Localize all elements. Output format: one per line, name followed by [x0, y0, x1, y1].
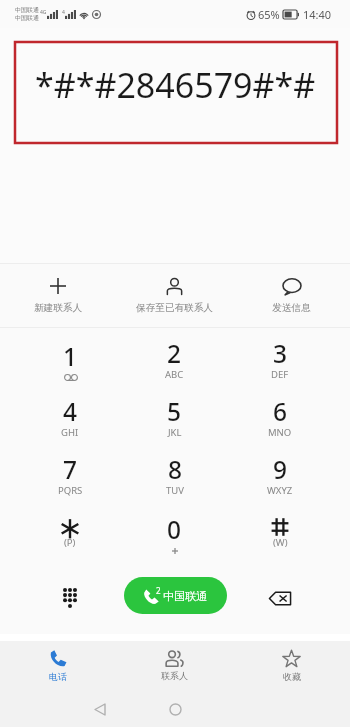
- staticText: 65%: [258, 7, 280, 22]
- button[interactable]: 收藏: [233, 641, 350, 690]
- staticText: DEF: [271, 368, 289, 381]
- staticText: (W): [273, 536, 288, 549]
- button[interactable]: (W): [227, 505, 332, 563]
- button[interactable]: 5: [122, 389, 227, 447]
- staticText: 中国联通: [15, 14, 39, 22]
- button[interactable]: 9: [227, 447, 332, 505]
- staticText: 中国联通: [15, 6, 39, 14]
- staticText: 新建联系人: [34, 302, 82, 314]
- button[interactable]: Back: [86, 695, 114, 723]
- staticText: 5: [167, 395, 182, 428]
- staticText: JKL: [168, 426, 182, 439]
- button[interactable]: 0: [122, 505, 227, 563]
- staticText: 6: [273, 395, 288, 428]
- button[interactable]: 新建联系人: [0, 264, 116, 327]
- staticText: (P): [64, 536, 76, 549]
- staticText: 2: [156, 585, 161, 596]
- staticText: 4: [63, 395, 78, 428]
- button[interactable]: 3: [227, 331, 332, 389]
- staticText: 1: [63, 340, 78, 373]
- button[interactable]: 6: [227, 389, 332, 447]
- staticText: PQRS: [58, 484, 83, 497]
- staticText: 7: [63, 453, 78, 486]
- staticText: WXYZ: [267, 484, 293, 497]
- staticText: 0: [167, 513, 182, 546]
- staticText: 4G: [40, 9, 47, 16]
- button[interactable]: 7: [18, 447, 122, 505]
- staticText: ABC: [165, 368, 184, 381]
- staticText: 8: [168, 453, 183, 486]
- staticText: 3: [273, 337, 288, 370]
- staticText: GHI: [61, 426, 79, 439]
- staticText: TUV: [166, 484, 184, 497]
- staticText: 保存至已有联系人: [136, 302, 213, 314]
- button[interactable]: Dialpad: [55, 583, 85, 613]
- staticText: 中国联通: [163, 589, 207, 603]
- button[interactable]: 保存至已有联系人: [116, 264, 233, 327]
- button[interactable]: Home: [161, 695, 189, 723]
- staticText: 2: [167, 337, 182, 370]
- button[interactable]: 2: [122, 331, 227, 389]
- staticText: 电话: [49, 671, 67, 682]
- button[interactable]: 4: [18, 389, 122, 447]
- staticText: 14:40: [303, 7, 332, 22]
- button[interactable]: 联系人: [116, 641, 233, 690]
- staticText: *#*#2846579#*#: [35, 62, 316, 108]
- staticText: 4: [62, 9, 65, 16]
- button[interactable]: 发送信息: [233, 264, 350, 327]
- button[interactable]: Delete: [263, 581, 297, 615]
- button[interactable]: 2: [124, 577, 227, 614]
- staticText: 收藏: [283, 671, 301, 682]
- button[interactable]: 1: [18, 331, 122, 389]
- staticText: 联系人: [161, 670, 188, 681]
- staticText: 发送信息: [272, 302, 311, 314]
- button[interactable]: 电话: [0, 641, 116, 690]
- staticText: 9: [273, 453, 288, 486]
- button[interactable]: 8: [122, 447, 227, 505]
- button[interactable]: (P): [18, 505, 122, 563]
- staticText: MNO: [268, 426, 292, 439]
